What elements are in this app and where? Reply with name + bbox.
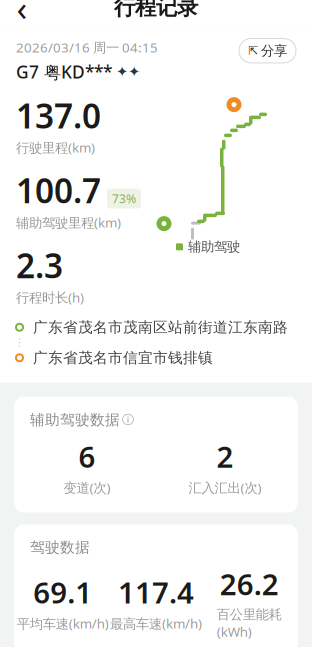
staticText: 行程时长(h) <box>16 288 84 306</box>
staticText: 2 <box>216 437 233 476</box>
staticText: 117.4 <box>118 573 194 612</box>
staticText: ⇱ <box>248 44 258 57</box>
staticText: 变道(次) <box>63 479 110 496</box>
staticText: 行驶里程(km) <box>16 139 95 156</box>
button[interactable]: ⇱ <box>239 38 296 63</box>
staticText: 百公里能耗(kWh) <box>217 606 282 640</box>
staticText: 辅助驾驶里程(km) <box>16 214 121 231</box>
staticText: 辅助驾驶数据 <box>30 411 120 429</box>
staticText: 驾驶数据 <box>30 538 90 556</box>
staticText: 分享 <box>261 42 287 59</box>
staticText: 2026/03/16 周一 04:15 <box>16 38 158 56</box>
staticText: G7 粤KD*** <box>16 60 112 83</box>
staticText: 最高车速(km/h) <box>110 615 202 632</box>
staticText: 平均车速(km/h) <box>17 615 109 632</box>
staticText: ✦✦ <box>116 63 140 80</box>
staticText: 行程记录 <box>114 0 198 21</box>
staticText: 137.0 <box>16 93 101 138</box>
staticText: 汇入汇出(次) <box>188 479 261 496</box>
staticText: ‹ <box>16 0 27 30</box>
staticText: 广东省茂名市信宜市钱排镇 <box>33 349 213 367</box>
staticText: 69.1 <box>33 573 92 612</box>
staticText: ⓘ <box>122 412 134 427</box>
staticText: 100.7 <box>16 168 101 213</box>
staticText: 73% <box>112 191 136 206</box>
button[interactable]: Back <box>0 0 44 24</box>
staticText: 2.3 <box>16 243 63 288</box>
staticText: 26.2 <box>220 564 279 603</box>
staticText: 辅助驾驶 <box>188 239 240 255</box>
staticText: 6 <box>78 437 95 476</box>
staticText: 广东省茂名市茂南区站前街道江东南路 <box>33 318 288 336</box>
